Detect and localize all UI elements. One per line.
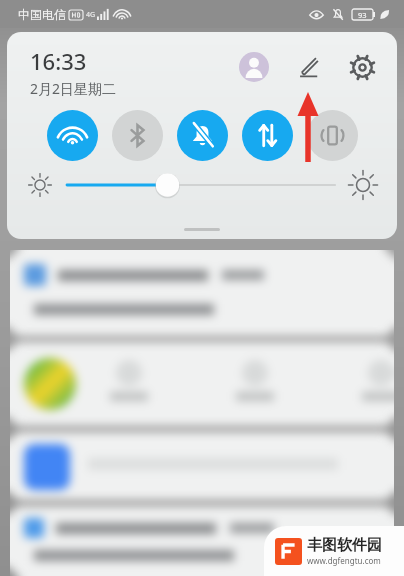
button[interactable] (10, 250, 394, 336)
button[interactable] (10, 342, 394, 426)
staticText: 16:33 (30, 46, 87, 76)
button[interactable]: Bluetooth (112, 110, 163, 161)
staticText: 丰图软件园 (307, 536, 382, 555)
button[interactable] (10, 432, 394, 500)
button[interactable]: Vibrate (307, 110, 358, 161)
button[interactable]: Silent (177, 110, 228, 161)
staticText: www.dgfengtu.com (307, 555, 393, 566)
staticText: 93 (358, 10, 367, 20)
button[interactable]: Edit (292, 51, 324, 83)
button[interactable]: User profile (239, 52, 269, 82)
staticText: 2月2日星期二 (30, 79, 117, 98)
staticText: 中国电信 (18, 7, 66, 22)
button[interactable]: Mobile data (242, 110, 293, 161)
staticText: 4G (86, 10, 96, 20)
button[interactable]: Wi-Fi (47, 110, 98, 161)
button[interactable] (10, 506, 394, 576)
button[interactable]: Settings (346, 51, 378, 83)
